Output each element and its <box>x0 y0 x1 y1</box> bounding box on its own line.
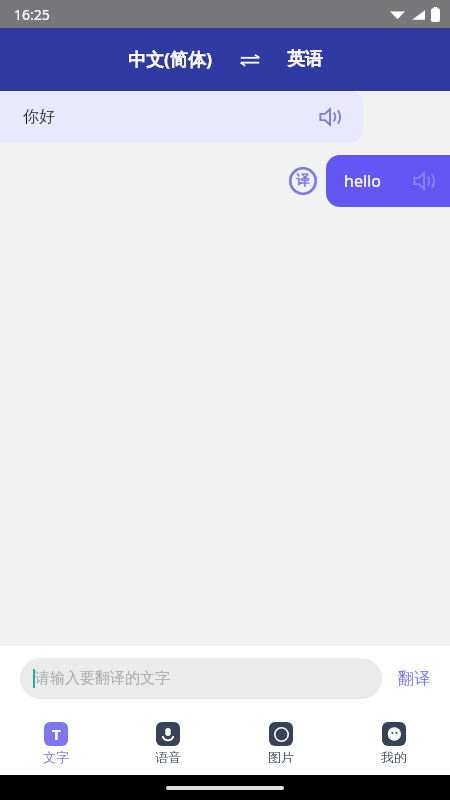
button[interactable]: 图片 <box>224 711 337 775</box>
button[interactable]: 我的 <box>337 711 450 775</box>
button[interactable]: Translate again <box>288 166 318 196</box>
button[interactable]: Swap languages <box>237 47 263 73</box>
staticText: 请输入要翻译的文字 <box>35 669 170 688</box>
staticText: 你好 <box>23 107 55 127</box>
staticText: 译 <box>296 172 310 190</box>
staticText: 语音 <box>155 749 181 765</box>
staticText: 英语 <box>287 48 323 71</box>
button[interactable]: 语音 <box>112 711 224 775</box>
staticText: 图片 <box>268 749 294 765</box>
button[interactable]: 英语 <box>281 44 329 75</box>
button[interactable]: 请输入要翻译的文字 <box>20 658 382 699</box>
button[interactable]: 翻译 <box>382 663 434 695</box>
button[interactable]: 中文(简体) <box>122 43 219 76</box>
staticText: 文字 <box>43 749 69 765</box>
staticText: hello <box>344 170 381 192</box>
staticText: 中文(简体) <box>128 47 213 72</box>
staticText: 我的 <box>381 749 407 765</box>
button[interactable]: hello <box>326 155 450 207</box>
button[interactable]: 你好 <box>0 91 363 143</box>
button[interactable]: Play source audio <box>317 104 343 130</box>
button[interactable]: T <box>0 711 112 775</box>
staticText: T <box>52 724 61 744</box>
staticText: 16:25 <box>14 5 50 24</box>
button[interactable]: Play translation audio <box>412 169 436 193</box>
staticText: 翻译 <box>398 669 430 689</box>
